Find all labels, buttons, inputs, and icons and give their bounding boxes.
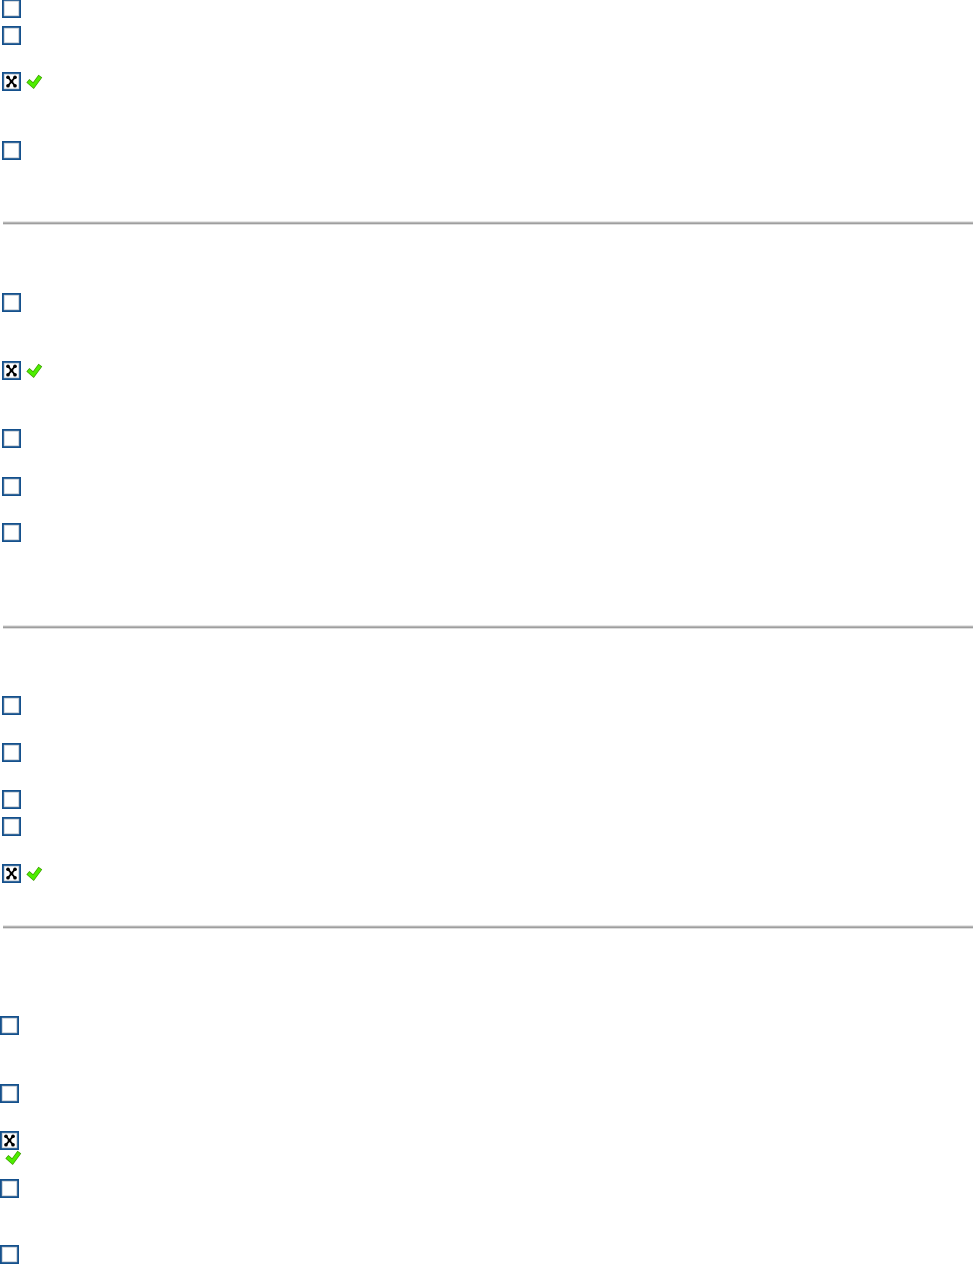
button[interactable]: Image placeholder: [2, 293, 21, 312]
button[interactable]: Broken image: [2, 361, 21, 380]
button[interactable]: Broken image: [0, 1131, 19, 1150]
button[interactable]: Image placeholder: [0, 1016, 19, 1035]
button[interactable]: Image placeholder: [2, 477, 21, 496]
button[interactable]: Verified: [26, 363, 43, 380]
button[interactable]: Image placeholder: [0, 1245, 19, 1264]
button[interactable]: Verified: [26, 74, 43, 91]
button[interactable]: Broken image: [2, 864, 21, 883]
button[interactable]: Image placeholder: [2, 696, 21, 715]
button[interactable]: Image placeholder: [2, 743, 21, 762]
button[interactable]: Verified: [26, 866, 43, 883]
button[interactable]: Image placeholder: [2, 141, 21, 160]
button[interactable]: Image placeholder: [2, 817, 21, 836]
button[interactable]: Image placeholder: [0, 1179, 19, 1198]
button[interactable]: Verified: [5, 1150, 22, 1167]
button[interactable]: Image placeholder: [2, 26, 21, 45]
button[interactable]: Image placeholder: [2, 0, 21, 18]
button[interactable]: Image placeholder: [2, 790, 21, 809]
button[interactable]: Image placeholder: [2, 429, 21, 448]
button[interactable]: Image placeholder: [0, 1084, 19, 1103]
button[interactable]: Image placeholder: [2, 523, 21, 542]
button[interactable]: Broken image: [2, 72, 21, 91]
